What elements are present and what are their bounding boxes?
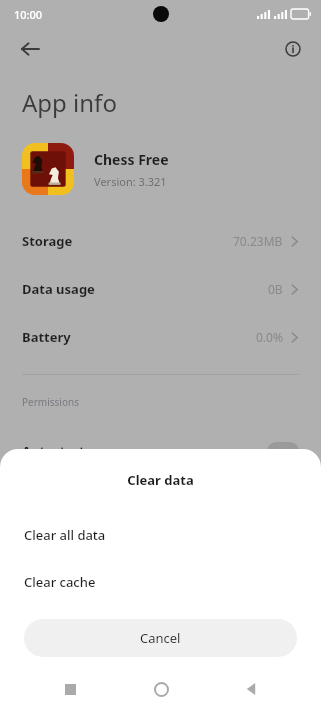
button[interactable]: Autostart [0,431,321,471]
button[interactable]: Battery [0,313,321,361]
staticText: 70.23MB [233,233,283,249]
button[interactable]: Back [12,31,48,67]
button[interactable]: Clear cache [0,558,321,605]
staticText: Clear data [127,471,194,489]
staticText: Data usage [22,280,95,298]
staticText: App info [22,86,117,119]
button[interactable]: App details [275,31,311,67]
staticText: 0.0% [256,329,283,345]
button[interactable]: Home [141,670,181,708]
button[interactable]: Recent apps [50,670,90,708]
staticText: Chess Free [94,150,169,169]
staticText: Clear cache [24,573,96,591]
button[interactable]: Data usage [0,265,321,313]
staticText: Version: 3.321 [94,174,167,189]
staticText: Autostart [22,442,85,460]
staticText: 0B [268,281,283,297]
button[interactable]: Cancel [24,619,297,657]
staticText: Battery [22,328,71,346]
staticText: Clear all data [24,526,106,544]
button[interactable]: Clear all data [0,511,321,558]
button[interactable]: Back [231,670,271,708]
staticText: 10:00 [14,7,43,22]
button[interactable]: Storage [0,217,321,265]
staticText: Permissions [22,395,79,409]
staticText: Storage [22,232,73,250]
staticText: Cancel [140,629,181,647]
